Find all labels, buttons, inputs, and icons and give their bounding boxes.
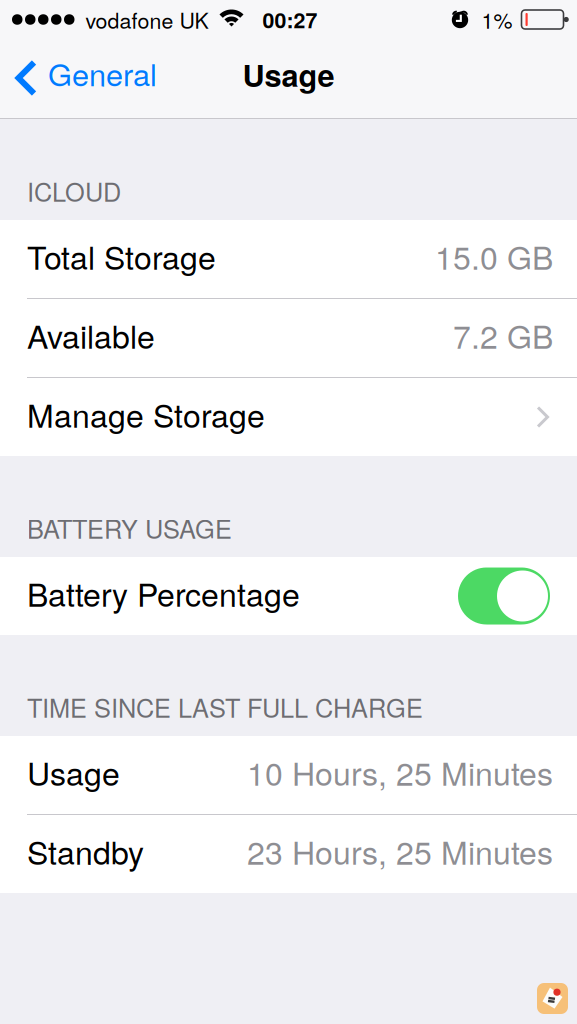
staticText: BATTERY USAGE [27, 510, 232, 546]
staticText: Usage [27, 749, 120, 795]
button[interactable]: Available [0, 299, 577, 377]
staticText: ICLOUD [27, 173, 121, 209]
staticText: 23 Hours, 25 Minutes [247, 828, 553, 874]
button[interactable]: Manage Storage [0, 378, 577, 456]
button[interactable]: Total Storage [0, 220, 577, 298]
staticText: Usage [242, 52, 334, 96]
staticText: 10 Hours, 25 Minutes [247, 749, 553, 795]
staticText: Manage Storage [27, 391, 265, 437]
button[interactable]: Battery Percentage [458, 567, 550, 624]
staticText: vodafone UK [85, 4, 208, 35]
staticText: Standby [27, 828, 144, 874]
staticText: 7.2 GB [453, 312, 553, 358]
button[interactable]: Usage [0, 736, 577, 814]
staticText: General [48, 51, 157, 95]
staticText: 1% [481, 4, 512, 35]
staticText: Total Storage [27, 233, 216, 279]
button[interactable]: General [0, 39, 169, 118]
staticText: Battery Percentage [27, 570, 300, 616]
staticText: Available [27, 312, 155, 358]
staticText: TIME SINCE LAST FULL CHARGE [27, 689, 423, 725]
button[interactable]: Standby [0, 815, 577, 893]
staticText: 00:27 [262, 4, 317, 35]
staticText: 15.0 GB [435, 233, 553, 279]
